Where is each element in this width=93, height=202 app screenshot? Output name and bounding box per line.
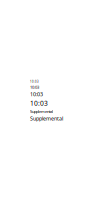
staticText: 10:03	[30, 91, 43, 98]
staticText: 10:03	[30, 80, 39, 83]
staticText: Supplemental	[30, 115, 63, 122]
staticText: Supplemental	[30, 109, 53, 114]
staticText: 10:03	[30, 99, 48, 108]
staticText: 10:03	[30, 84, 39, 90]
